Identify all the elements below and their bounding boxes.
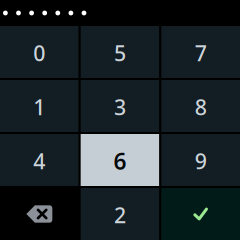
staticText: 8 — [195, 93, 207, 121]
staticText: 4 — [33, 147, 45, 175]
staticText: 3 — [114, 93, 126, 121]
button[interactable]: 2 — [81, 188, 159, 240]
button[interactable]: 1 — [0, 80, 79, 132]
button[interactable]: 4 — [0, 134, 79, 186]
button[interactable]: Delete — [0, 188, 79, 240]
button[interactable]: Confirm — [161, 188, 240, 240]
staticText: 9 — [195, 147, 207, 175]
staticText: 0 — [33, 39, 45, 67]
button[interactable]: 9 — [161, 134, 240, 186]
button[interactable]: 5 — [81, 26, 159, 78]
button[interactable]: 6 — [81, 134, 159, 186]
staticText: 1 — [33, 93, 45, 121]
staticText: 5 — [114, 39, 126, 67]
staticText: 6 — [113, 146, 126, 176]
staticText: 7 — [195, 39, 207, 67]
button[interactable]: 0 — [0, 26, 79, 78]
button[interactable]: 8 — [161, 80, 240, 132]
button[interactable]: 3 — [81, 80, 159, 132]
button[interactable]: 7 — [161, 26, 240, 78]
staticText: 2 — [114, 201, 126, 229]
